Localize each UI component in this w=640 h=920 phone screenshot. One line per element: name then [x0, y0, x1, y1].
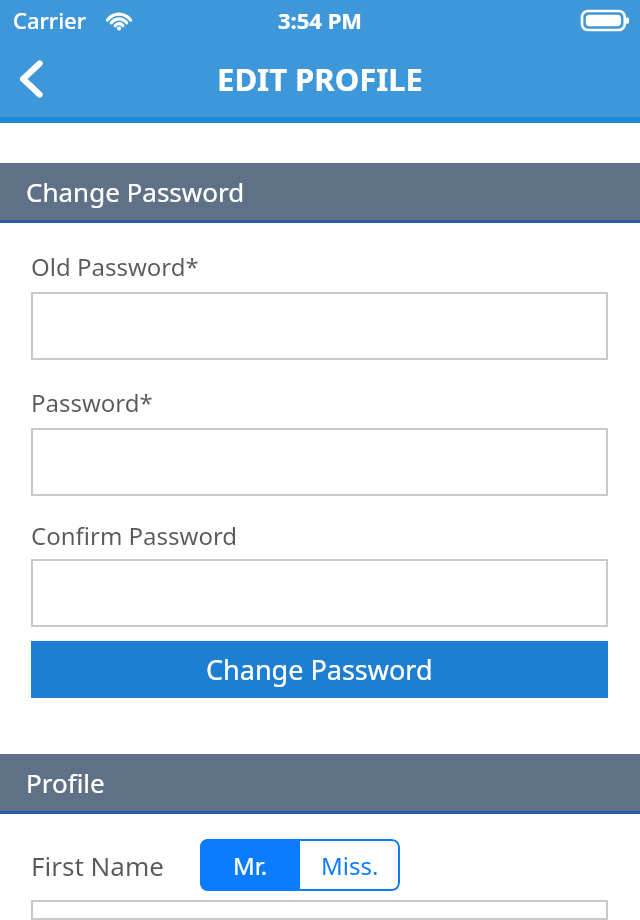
staticText: Confirm Password [31, 519, 238, 552]
button[interactable]: Back [0, 43, 62, 115]
staticText: Profile [26, 765, 105, 800]
staticText: Miss. [321, 849, 379, 882]
staticText: Carrier [13, 5, 87, 35]
button[interactable] [31, 559, 608, 627]
button[interactable]: Mr. [200, 839, 300, 891]
button[interactable] [31, 292, 608, 360]
staticText: Password* [31, 386, 153, 419]
staticText: First Name [31, 848, 164, 883]
button[interactable]: Penkei [31, 900, 608, 920]
staticText: 3:54 PM [278, 5, 363, 35]
button[interactable]: Change Password [31, 641, 608, 698]
button[interactable] [31, 428, 608, 496]
staticText: Mr. [233, 849, 268, 882]
staticText: Change Password [26, 174, 245, 209]
button[interactable]: Miss. [300, 839, 400, 891]
staticText: Change Password [206, 651, 433, 688]
staticText: EDIT PROFILE [217, 58, 423, 100]
staticText: Old Password* [31, 250, 199, 283]
